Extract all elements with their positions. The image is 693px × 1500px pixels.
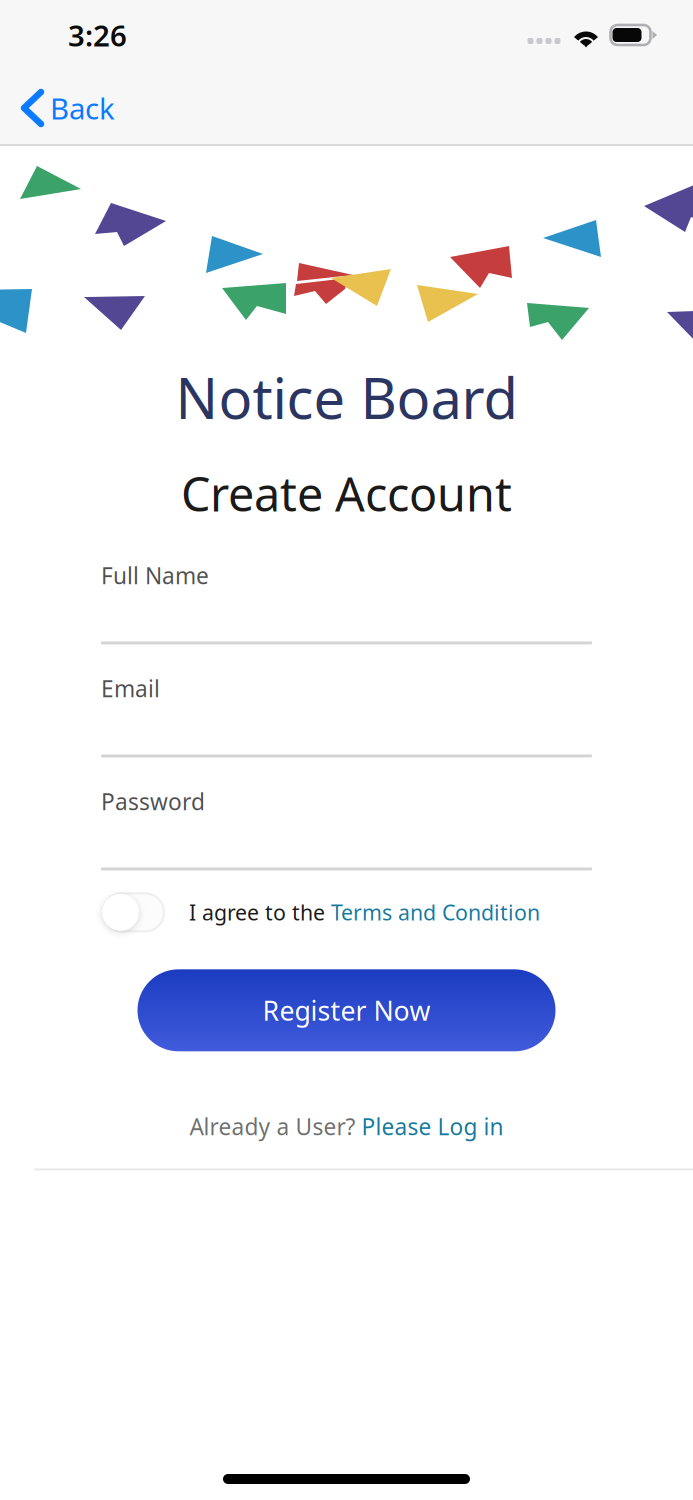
button[interactable]: Please Log in xyxy=(361,1111,503,1141)
button[interactable]: I agree to the terms xyxy=(103,893,164,931)
staticText: Already a User? xyxy=(189,1111,361,1141)
staticText: Email xyxy=(101,673,160,703)
staticText: Please Log in xyxy=(361,1111,503,1141)
staticText: 3:26 xyxy=(68,15,127,54)
staticText: Back xyxy=(50,88,115,127)
staticText: Register Now xyxy=(262,993,430,1028)
staticText: Full Name xyxy=(101,560,209,590)
staticText: I agree to the xyxy=(189,898,331,926)
staticText: Notice Board xyxy=(175,360,517,434)
button[interactable]: Terms and Condition xyxy=(331,898,540,926)
staticText: Password xyxy=(101,786,205,816)
staticText: Terms and Condition xyxy=(331,898,540,926)
button[interactable]: Register Now xyxy=(137,969,555,1051)
staticText: Create Account xyxy=(181,462,512,524)
button[interactable]: Back xyxy=(0,70,693,146)
